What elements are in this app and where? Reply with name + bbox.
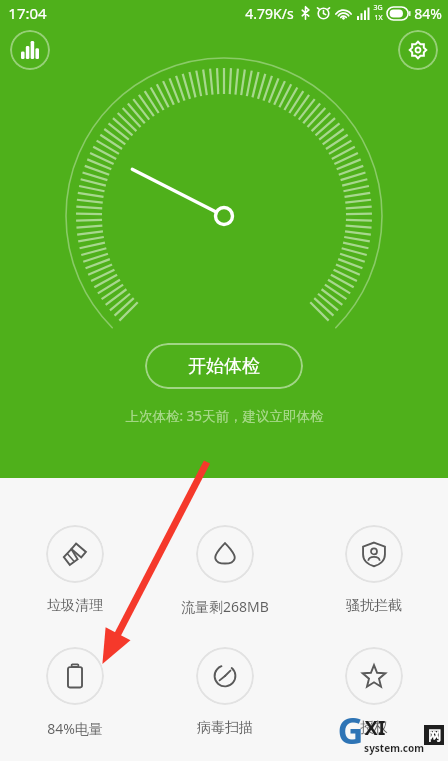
button[interactable]: 开始体检 — [145, 343, 303, 389]
staticText: 垃圾清理 — [47, 597, 103, 615]
staticText: 17:04 — [8, 3, 47, 23]
button[interactable]: Settings — [398, 30, 438, 70]
staticText: 病毒扫描 — [197, 719, 253, 737]
staticText: 3G — [373, 3, 383, 13]
button[interactable]: 垃圾清理 — [0, 523, 150, 617]
staticText: system.com — [364, 741, 424, 755]
staticText: 网 — [428, 727, 441, 743]
staticText: 上次体检: 35天前，建议立即体检 — [125, 407, 324, 425]
staticText: 授权 — [360, 719, 388, 737]
button[interactable]: 授权 — [299, 645, 448, 739]
button[interactable]: 流量剩268MB — [150, 523, 299, 618]
button[interactable]: 骚扰拦截 — [299, 523, 448, 617]
staticText: G — [337, 706, 364, 755]
staticText: XI — [364, 714, 386, 741]
button[interactable]: Statistics — [10, 30, 50, 70]
staticText: 1X — [374, 13, 383, 23]
staticText: 骚扰拦截 — [346, 597, 402, 615]
button[interactable]: 病毒扫描 — [150, 645, 299, 739]
staticText: 流量剩268MB — [181, 597, 269, 616]
button[interactable]: 84%电量 — [0, 645, 150, 740]
staticText: 4.79K/s — [245, 4, 294, 23]
staticText: 84%电量 — [47, 719, 103, 738]
staticText: 开始体检 — [188, 355, 260, 378]
staticText: 84% — [414, 4, 442, 23]
